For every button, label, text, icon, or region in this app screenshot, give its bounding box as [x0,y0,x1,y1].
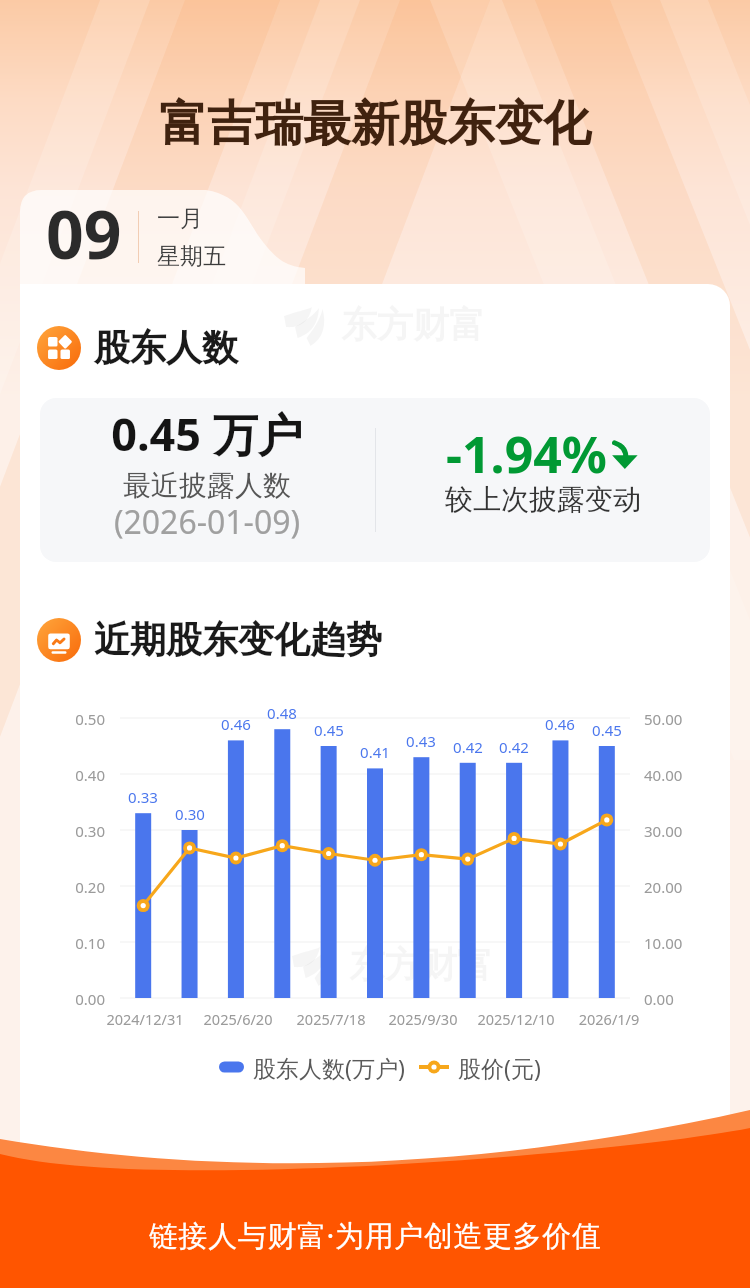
staticText: 0.43 [391,731,451,751]
staticText: 0.50 [33,709,105,729]
staticText: 一月 [157,204,203,233]
staticText: 0.10 [33,933,105,953]
staticText: 0.00 [33,989,105,1009]
staticText: 链接人与财富·为用户创造更多价值 [149,1215,602,1255]
staticText: 东方财富 [341,302,485,347]
staticText: 40.00 [644,765,724,785]
staticText: 0.45 [577,720,637,740]
staticText: 0.30 [160,804,220,824]
staticText: 股东人数 [94,325,238,370]
staticText: 2025/6/20 [178,1009,298,1029]
staticText: 30.00 [644,821,724,841]
staticText: 0.46 [530,714,590,734]
staticText: 东方财富 [349,942,493,987]
staticText: 0.42 [438,737,498,757]
staticText: 09 [46,188,122,278]
staticText: 股价(元) [458,1052,541,1083]
staticText: 2025/9/30 [363,1009,483,1029]
staticText: 近期股东变化趋势 [94,617,382,662]
staticText: 0.00 [644,989,724,1009]
button[interactable]: 近期股东变化趋势 [37,617,382,662]
staticText: 2024/12/31 [85,1009,205,1029]
staticText: 0.46 [206,714,266,734]
staticText: 富吉瑞最新股东变化 [0,94,750,154]
staticText: 0.40 [33,765,105,785]
staticText: 0.33 [113,787,173,807]
staticText: (2026-01-09) [47,500,367,544]
staticText: 较上次披露变动 [383,482,703,517]
staticText: 0.42 [484,737,544,757]
staticText: 2026/1/9 [549,1009,669,1029]
staticText: 股东人数(万户) [253,1052,405,1083]
staticText: 0.20 [33,877,105,897]
staticText: 0.48 [252,703,312,723]
staticText: 最近披露人数 [47,468,367,503]
staticText: 星期五 [157,242,226,271]
staticText: 50.00 [644,709,724,729]
staticText: 0.30 [33,821,105,841]
staticText: 2025/7/18 [271,1009,391,1029]
staticText: 0.45 [299,720,359,740]
staticText: 20.00 [644,877,724,897]
staticText: -1.94% [446,420,607,488]
staticText: 0.41 [345,742,405,762]
staticText: 2025/12/10 [456,1009,576,1029]
staticText: 0.45 万户 [47,403,367,464]
button[interactable]: 股东人数 [37,325,238,370]
staticText: 10.00 [644,933,724,953]
